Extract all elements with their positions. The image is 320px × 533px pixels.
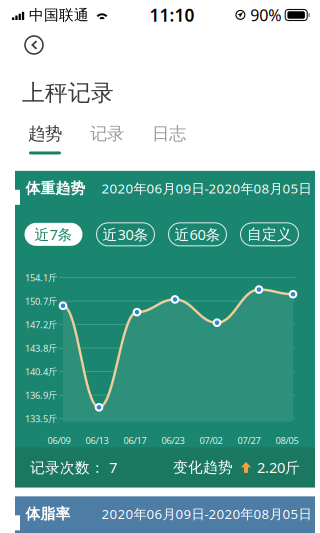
staticText: 06/09 bbox=[47, 434, 70, 446]
staticText: 趋势 bbox=[28, 123, 62, 144]
staticText: 体脂率 bbox=[25, 505, 70, 523]
staticText: 体重趋势 bbox=[25, 179, 85, 197]
staticText: 140.4斤 bbox=[25, 365, 57, 378]
staticText: 133.5斤 bbox=[25, 412, 57, 425]
staticText: 中国联通 bbox=[29, 6, 89, 24]
staticText: 154.1斤 bbox=[25, 271, 57, 284]
staticText: 2020年06月09日-2020年08月05日 bbox=[101, 505, 311, 523]
staticText: 06/13 bbox=[85, 434, 108, 446]
button[interactable]: 趋势 bbox=[14, 123, 76, 155]
button[interactable]: 近60条 bbox=[168, 223, 226, 246]
staticText: 记录 bbox=[90, 123, 124, 144]
button[interactable]: 近30条 bbox=[96, 223, 154, 246]
staticText: 2.20斤 bbox=[257, 458, 300, 477]
staticText: 日志 bbox=[152, 123, 186, 144]
staticText: 上秤记录 bbox=[22, 79, 114, 107]
staticText: 08/05 bbox=[275, 434, 298, 446]
button[interactable]: 记录 bbox=[76, 123, 138, 155]
staticText: 近60条 bbox=[174, 225, 220, 244]
staticText: 近30条 bbox=[102, 225, 148, 244]
staticText: 07/02 bbox=[199, 434, 222, 446]
staticText: 记录次数： 7 bbox=[30, 458, 117, 477]
staticText: 136.9斤 bbox=[25, 389, 57, 401]
staticText: 90% bbox=[250, 4, 281, 26]
button[interactable]: 自定义 bbox=[240, 223, 298, 246]
staticText: 2020年06月09日-2020年08月05日 bbox=[101, 179, 311, 197]
staticText: 06/17 bbox=[123, 434, 146, 446]
staticText: 自定义 bbox=[247, 225, 292, 243]
button[interactable]: 近7条 bbox=[24, 223, 82, 246]
button[interactable]: 日志 bbox=[138, 123, 200, 155]
staticText: 11:10 bbox=[150, 3, 195, 26]
staticText: 06/23 bbox=[161, 434, 184, 446]
staticText: 变化趋势 bbox=[173, 458, 233, 476]
button[interactable]: Back bbox=[18, 31, 50, 59]
staticText: 143.8斤 bbox=[25, 342, 57, 354]
staticText: 近7条 bbox=[34, 225, 72, 244]
staticText: 07/27 bbox=[237, 434, 260, 446]
staticText: 150.7斤 bbox=[25, 295, 57, 307]
staticText: 147.2斤 bbox=[25, 318, 57, 331]
